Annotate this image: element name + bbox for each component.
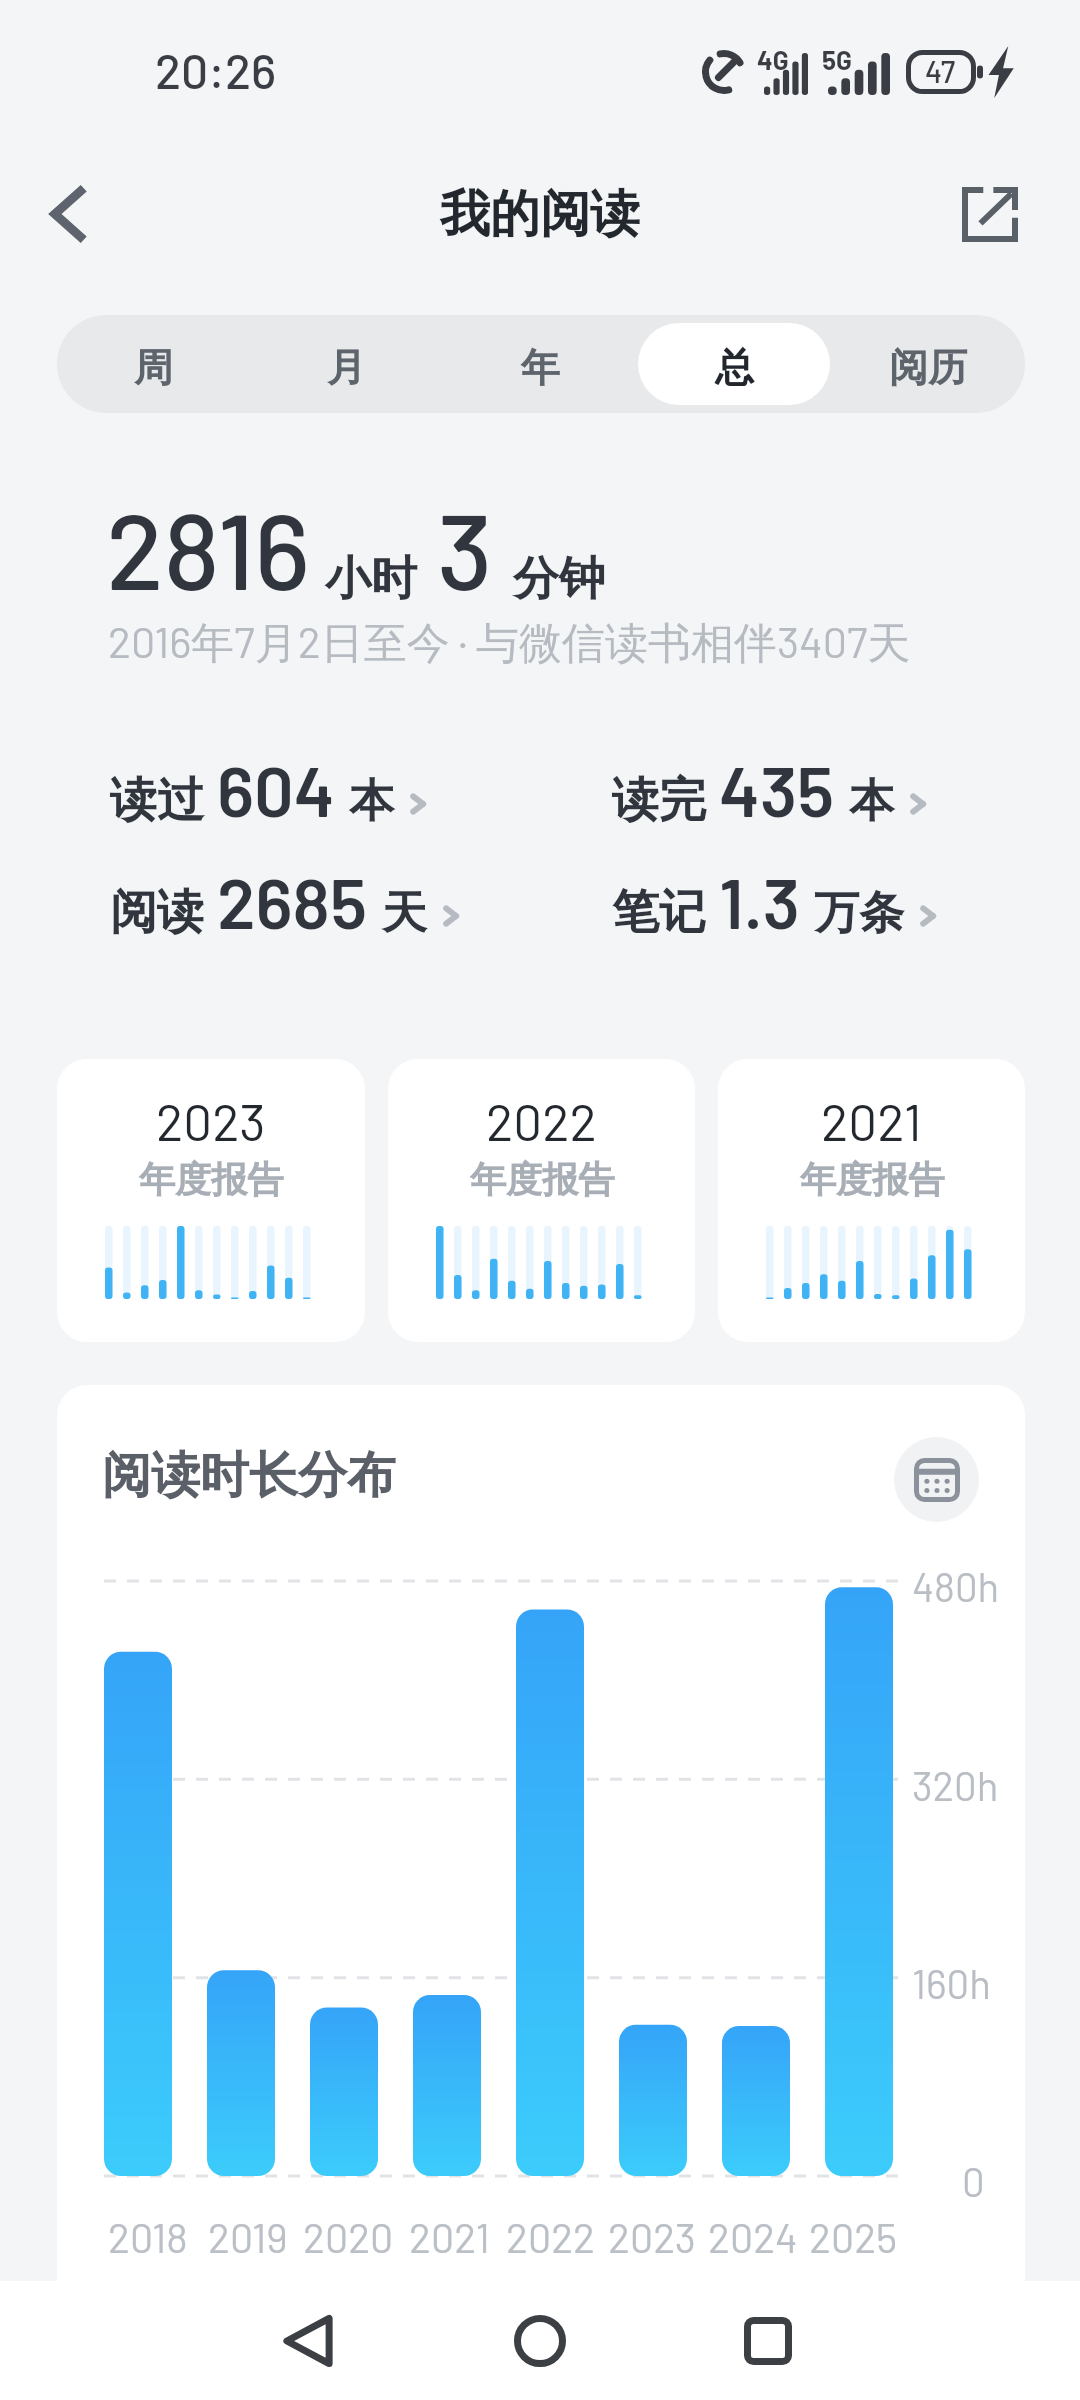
staticText: 2018 (108, 2212, 188, 2261)
staticText: 2019 (208, 2212, 288, 2261)
button[interactable]: Share (936, 148, 1044, 280)
staticText: 年度报告 (139, 1157, 283, 1202)
staticText: 2816 (106, 484, 310, 611)
button[interactable]: Back (14, 148, 118, 280)
staticText: 435 (719, 747, 835, 831)
button[interactable]: 阅读 (110, 855, 467, 947)
staticText: 我的阅读 (440, 183, 640, 246)
staticText: 604 (217, 747, 335, 831)
button[interactable]: Calendar (894, 1437, 979, 1522)
button[interactable]: 总 (638, 323, 830, 405)
staticText: 总 (715, 343, 754, 392)
button[interactable]: 2021 (718, 1059, 1025, 1342)
button[interactable]: Back (228, 2281, 388, 2400)
staticText: 阅历 (889, 343, 967, 392)
staticText: 阅读时长分布 (102, 1445, 396, 1507)
button[interactable]: Recents (688, 2281, 848, 2400)
staticText: 2024 (708, 2212, 798, 2261)
button[interactable]: 读过 (110, 743, 434, 835)
staticText: 2023 (608, 2212, 696, 2261)
staticText: 2685 (217, 859, 368, 943)
staticText: 万条 (814, 885, 904, 942)
staticText: 阅读 (110, 883, 204, 942)
button[interactable]: 笔记 (612, 855, 944, 947)
staticText: 读过 (110, 771, 204, 830)
staticText: 2016年7月2日至今 · 与微信读书相伴3407天 (108, 615, 911, 671)
staticText: 5G (822, 44, 852, 75)
staticText: 4G (757, 44, 789, 75)
button[interactable]: 2023 (57, 1059, 365, 1342)
staticText: 2022 (506, 2212, 596, 2261)
staticText: 2025 (809, 2212, 898, 2261)
staticText: 年度报告 (800, 1157, 944, 1202)
staticText: 2020 (303, 2212, 394, 2261)
staticText: 47 (925, 53, 956, 89)
staticText: 笔记 (612, 883, 706, 942)
staticText: 1.3 (719, 859, 800, 943)
staticText: 20:26 (155, 41, 277, 99)
button[interactable]: 读完 (612, 743, 934, 835)
button[interactable]: 阅历 (832, 323, 1024, 405)
staticText: 2021 (821, 1090, 922, 1151)
button[interactable]: 2022 (388, 1059, 695, 1342)
button[interactable]: 月 (251, 323, 442, 405)
staticText: 0 (962, 2157, 985, 2205)
staticText: 2023 (156, 1090, 266, 1151)
staticText: 320h (912, 1761, 999, 1809)
button[interactable]: 周 (58, 323, 249, 405)
staticText: 本 (349, 773, 394, 830)
staticText: 周 (134, 343, 173, 392)
staticText: 2021 (409, 2212, 490, 2261)
staticText: 2022 (486, 1090, 597, 1151)
staticText: 160h (912, 1959, 991, 2007)
staticText: 分钟 (513, 550, 605, 608)
button[interactable]: 年 (444, 323, 636, 405)
staticText: 3 (437, 484, 493, 611)
button[interactable]: Home (460, 2281, 620, 2400)
staticText: 年度报告 (470, 1157, 614, 1202)
staticText: 月 (327, 343, 366, 392)
staticText: 读完 (612, 771, 706, 830)
staticText: 小时 (325, 550, 417, 608)
staticText: 天 (382, 885, 427, 942)
staticText: 年 (521, 343, 560, 392)
staticText: 480h (912, 1562, 1000, 1610)
staticText: 本 (849, 773, 894, 830)
